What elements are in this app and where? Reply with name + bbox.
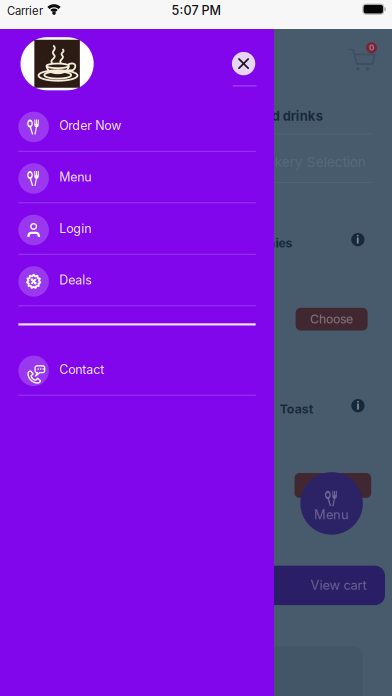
button[interactable]: Order Now <box>18 100 256 152</box>
staticText: Menu <box>59 169 91 184</box>
button[interactable]: Login <box>18 203 256 255</box>
staticText: i <box>356 399 359 412</box>
button[interactable]: Menu <box>299 472 365 535</box>
button[interactable]: View cart <box>140 566 385 605</box>
staticText: Choose <box>311 478 354 493</box>
staticText: Bakery Selection <box>258 154 366 170</box>
button[interactable]: Deals <box>18 255 256 306</box>
button[interactable]: Choose <box>294 473 371 498</box>
button[interactable]: Cart <box>348 46 375 69</box>
staticText: 0 <box>369 43 374 53</box>
staticText: 5:07 PM <box>171 3 220 18</box>
staticText: Brownies <box>237 236 292 250</box>
staticText: Choose <box>310 312 353 327</box>
staticText: Carrier <box>7 4 43 18</box>
staticText: Contact <box>59 362 104 377</box>
staticText: Login <box>59 221 91 236</box>
staticText: Order Now <box>59 118 121 133</box>
button[interactable]: Contact <box>18 344 256 396</box>
button[interactable]: Close menu <box>232 52 255 75</box>
button[interactable]: Choose <box>296 308 368 330</box>
button[interactable]: Menu <box>18 152 256 203</box>
staticText: Hot or cold drinks <box>210 108 323 124</box>
staticText: Toast <box>280 402 313 416</box>
staticText: Deals <box>59 272 92 287</box>
staticText: View cart <box>311 577 367 593</box>
staticText: Menu <box>314 507 349 522</box>
staticText: i <box>356 233 359 246</box>
